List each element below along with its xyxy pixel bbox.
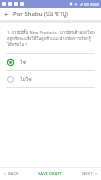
- staticText: ไม่ใช่: [20, 75, 32, 83]
- button[interactable]: Back: [2, 10, 10, 18]
- button[interactable]: ไม่ใช่: [1, 71, 100, 87]
- button[interactable]: ใช่: [1, 54, 100, 70]
- staticText: SAVE DRAFT: [38, 171, 62, 177]
- staticText: Por Shabu (ปอ ชาบู): [13, 9, 68, 19]
- staticText: NEXT: [82, 171, 93, 177]
- button[interactable]: BACK: [0, 167, 31, 180]
- staticText: BACK: [8, 171, 19, 177]
- button[interactable]: NEXT: [69, 167, 101, 180]
- staticText: 1. กรณีมีสิ้น New Products : มาณีสินค้าอ…: [7, 29, 95, 48]
- staticText: ใช่: [20, 58, 26, 66]
- button[interactable]: SAVE DRAFT: [31, 167, 69, 180]
